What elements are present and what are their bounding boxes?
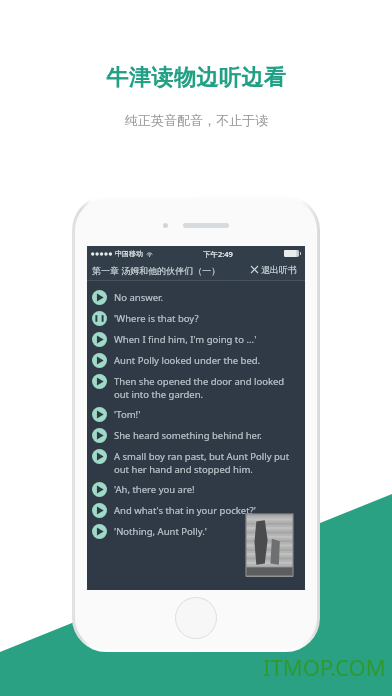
button[interactable]: 播放 (87, 500, 305, 521)
staticText: 纯正英音配音，不止于读 (125, 112, 268, 128)
staticText: A small boy ran past, but Aunt Polly put… (114, 450, 297, 476)
staticText: 退出听书 (261, 264, 297, 275)
button[interactable]: 播放 (87, 329, 305, 350)
other: 播放 (92, 353, 107, 368)
button[interactable]: 暂停 (87, 308, 305, 329)
staticText: 'Where is that boy? (114, 312, 297, 325)
staticText: Then she opened the door and looked out … (114, 375, 297, 401)
other: 关闭 (251, 266, 258, 273)
other: 播放 (92, 482, 107, 497)
other: 播放 (92, 428, 107, 443)
other: 播放 (92, 374, 107, 389)
button[interactable]: 播放 (87, 446, 305, 479)
other: 播放 (92, 503, 107, 518)
button[interactable]: 播放 (87, 425, 305, 446)
staticText: Aunt Polly looked under the bed. (114, 354, 297, 367)
staticText: 'Ah, there you are! (114, 483, 297, 496)
other: 播放 (92, 524, 107, 539)
button[interactable]: 播放 (87, 350, 305, 371)
other: 播放 (92, 332, 107, 347)
other: 播放 (92, 290, 107, 305)
button[interactable]: 播放 (87, 371, 305, 404)
staticText: No answer. (114, 291, 297, 304)
button[interactable]: 播放 (87, 521, 305, 542)
staticText: 下午2:49 (203, 249, 233, 259)
staticText: 中国移动 (115, 249, 143, 258)
button[interactable]: 播放 (87, 404, 305, 425)
staticText: When I find him, I'm going to ...' (114, 333, 297, 346)
other: 暂停 (92, 311, 107, 326)
staticText: She heard something behind her. (114, 429, 297, 442)
staticText: ITMOP.COM (263, 652, 386, 682)
button[interactable]: 关闭 (249, 263, 299, 276)
staticText: 'Tom!' (114, 408, 297, 421)
staticText: And what's that in your pocket?' (114, 504, 297, 517)
staticText: 第一章 汤姆和他的伙伴们（一） (92, 264, 221, 276)
button[interactable]: 播放 (87, 287, 305, 308)
other: 播放 (92, 407, 107, 422)
staticText: 'Nothing, Aunt Polly.' (114, 525, 297, 538)
other: 播放 (92, 449, 107, 464)
button[interactable]: 播放 (87, 479, 305, 500)
staticText: 牛津读物边听边看 (106, 64, 286, 92)
